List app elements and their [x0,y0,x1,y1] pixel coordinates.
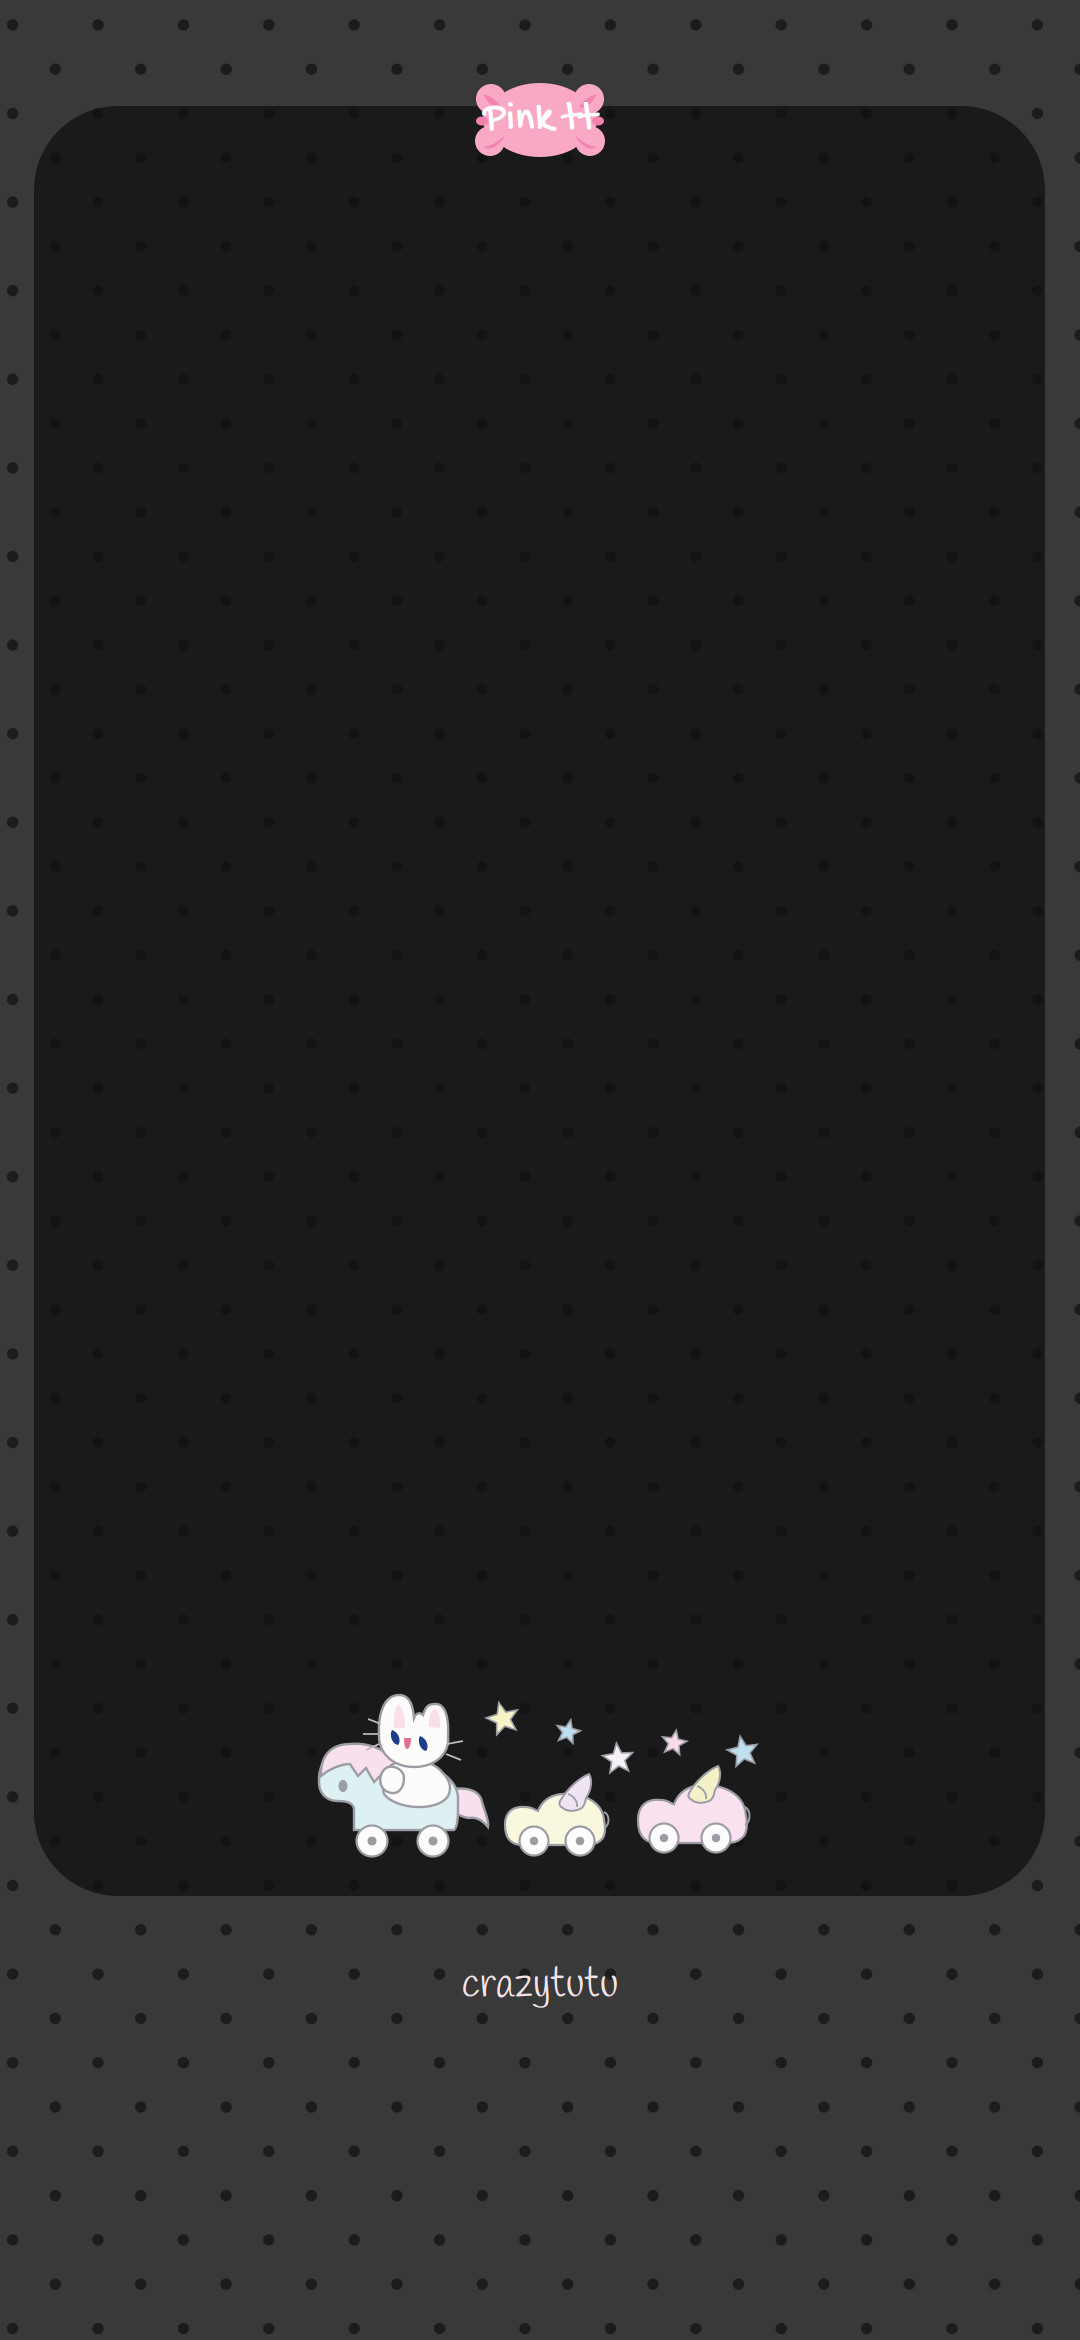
staticText: crazytutu [461,1958,618,2013]
staticText: Pink tt [483,96,597,144]
